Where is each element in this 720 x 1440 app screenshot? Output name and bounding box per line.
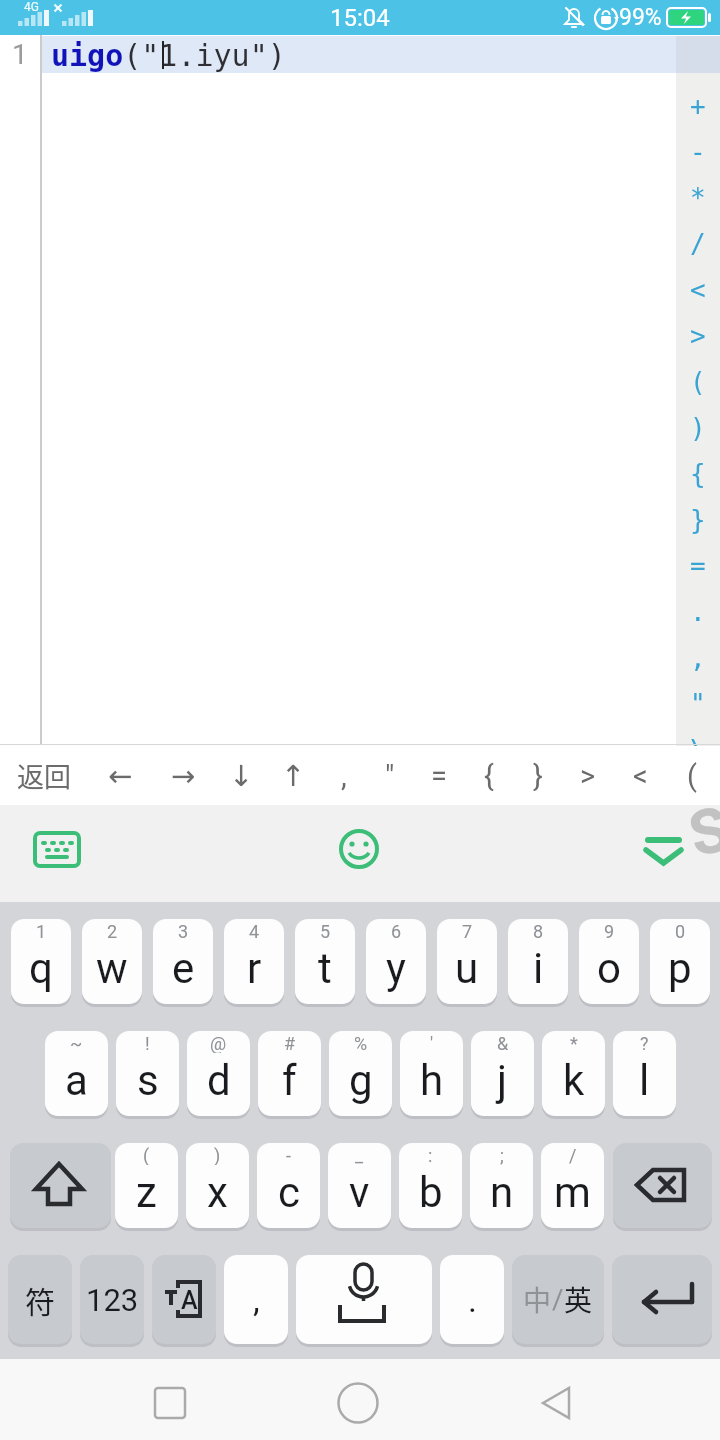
button[interactable]: ' xyxy=(400,1031,463,1116)
staticText: A xyxy=(181,1286,198,1315)
button[interactable]: 5 xyxy=(295,919,355,1004)
button[interactable]: 6 xyxy=(366,919,426,1004)
button[interactable]: ( xyxy=(115,1143,178,1228)
button[interactable] xyxy=(612,1255,712,1344)
button[interactable]: 符 xyxy=(8,1255,72,1344)
staticText: o xyxy=(597,944,621,993)
button[interactable]: - xyxy=(257,1143,320,1228)
button[interactable]: ← xyxy=(98,746,142,805)
button[interactable] xyxy=(526,1370,586,1430)
button[interactable]: } xyxy=(676,497,720,543)
button[interactable]: 1 xyxy=(11,919,71,1004)
staticText: r xyxy=(247,944,262,993)
staticText: } xyxy=(533,759,543,793)
button[interactable]: = xyxy=(676,543,720,589)
button[interactable]: * xyxy=(676,175,720,221)
button[interactable] xyxy=(10,1143,111,1228)
staticText: q xyxy=(29,944,53,993)
button[interactable]: = xyxy=(417,746,461,805)
button[interactable]: < xyxy=(676,267,720,313)
staticText: 返回 xyxy=(17,756,71,795)
button[interactable]: + xyxy=(676,83,720,129)
button[interactable] xyxy=(330,820,390,888)
button[interactable]: > xyxy=(566,746,610,805)
staticText: 2 xyxy=(107,921,118,941)
staticText: 123 xyxy=(86,1282,139,1318)
staticText: s xyxy=(137,1056,159,1105)
staticText: < xyxy=(633,759,648,793)
staticText: ↑ xyxy=(281,759,306,793)
button[interactable] xyxy=(630,820,700,888)
button[interactable]: & xyxy=(471,1031,534,1116)
staticText: 7 xyxy=(462,921,473,941)
button[interactable]: 7 xyxy=(437,919,497,1004)
button[interactable]: _ xyxy=(328,1143,391,1228)
button[interactable]: / xyxy=(541,1143,604,1228)
button[interactable]: " xyxy=(368,746,412,805)
staticText: w xyxy=(96,944,128,993)
button[interactable]: 123 xyxy=(80,1255,144,1344)
staticText: a xyxy=(65,1056,88,1105)
staticText: ( xyxy=(690,367,706,397)
button[interactable]: , xyxy=(224,1255,288,1344)
button[interactable]: 4 xyxy=(224,919,284,1004)
button[interactable]: { xyxy=(676,451,720,497)
button[interactable]: ↑ xyxy=(271,746,315,805)
button[interactable]: \ xyxy=(676,727,720,773)
button[interactable]: < xyxy=(618,746,662,805)
staticText: 4 xyxy=(249,921,260,941)
button[interactable]: } xyxy=(516,746,560,805)
staticText: . xyxy=(468,1280,477,1320)
button[interactable]: → xyxy=(161,746,205,805)
staticText: f xyxy=(282,1056,297,1105)
staticText: , xyxy=(341,759,347,793)
staticText: 99% xyxy=(619,4,662,31)
button[interactable]: A xyxy=(152,1255,216,1344)
button[interactable] xyxy=(20,823,92,885)
staticText: \ xyxy=(690,735,706,765)
button[interactable]: ! xyxy=(116,1031,179,1116)
staticText: t xyxy=(318,944,332,993)
button[interactable]: % xyxy=(329,1031,392,1116)
button[interactable]: , xyxy=(676,635,720,681)
button[interactable] xyxy=(328,1370,388,1430)
button[interactable]: ~ xyxy=(45,1031,108,1116)
staticText: y xyxy=(386,944,406,993)
button[interactable]: ↓ xyxy=(219,746,263,805)
button[interactable]: 2 xyxy=(82,919,142,1004)
button[interactable]: 返回 xyxy=(8,746,80,805)
button[interactable]: ( xyxy=(670,746,714,805)
staticText: ~ xyxy=(70,1033,83,1053)
staticText: * xyxy=(690,183,706,213)
button[interactable]: 8 xyxy=(508,919,568,1004)
button[interactable] xyxy=(140,1370,200,1430)
button[interactable]: . xyxy=(676,589,720,635)
button[interactable]: / xyxy=(676,221,720,267)
button[interactable]: : xyxy=(399,1143,462,1228)
staticText: @ xyxy=(210,1033,227,1053)
staticText: + xyxy=(690,91,706,121)
button[interactable]: # xyxy=(258,1031,321,1116)
button[interactable] xyxy=(296,1255,432,1344)
button[interactable]: ? xyxy=(613,1031,676,1116)
button[interactable]: " xyxy=(676,681,720,727)
button[interactable]: { xyxy=(467,746,511,805)
button[interactable]: ; xyxy=(470,1143,533,1228)
button[interactable]: > xyxy=(676,313,720,359)
staticText: ) xyxy=(214,1145,221,1165)
button[interactable]: ) xyxy=(186,1143,249,1228)
button[interactable]: . xyxy=(440,1255,504,1344)
staticText: k xyxy=(563,1056,585,1105)
button[interactable]: 9 xyxy=(579,919,639,1004)
button[interactable]: 0 xyxy=(650,919,710,1004)
button[interactable]: * xyxy=(542,1031,605,1116)
button[interactable]: 3 xyxy=(153,919,213,1004)
button[interactable]: ( xyxy=(676,359,720,405)
staticText: ! xyxy=(145,1033,150,1053)
button[interactable]: @ xyxy=(187,1031,250,1116)
button[interactable]: , xyxy=(322,746,366,805)
button[interactable]: 中 xyxy=(512,1255,604,1344)
button[interactable]: - xyxy=(676,129,720,175)
button[interactable] xyxy=(613,1143,712,1228)
button[interactable]: ) xyxy=(676,405,720,451)
